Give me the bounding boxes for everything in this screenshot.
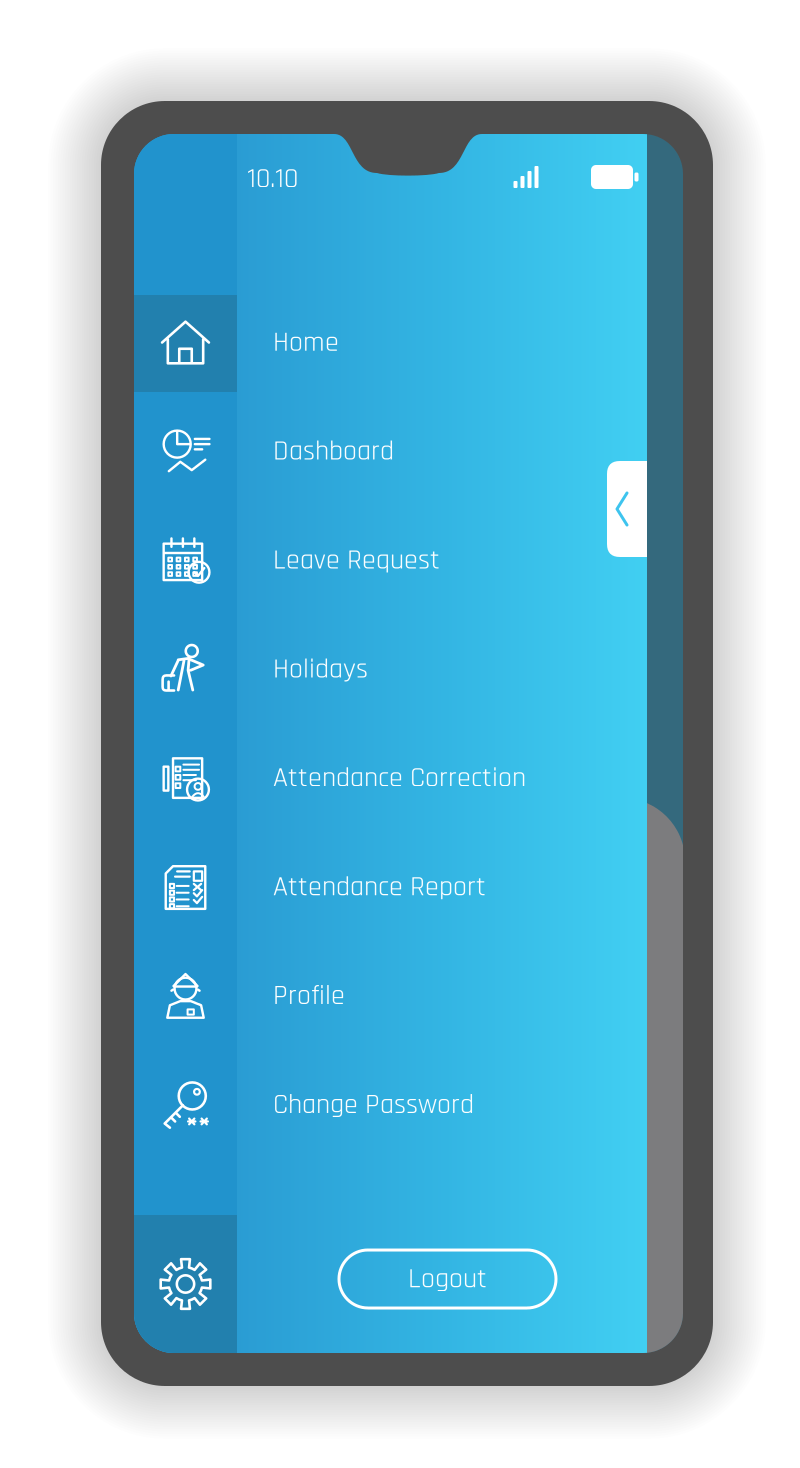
button[interactable]: Logout [339, 1250, 556, 1308]
button[interactable]: Change Password [134, 1055, 647, 1155]
button[interactable]: Settings [134, 1215, 237, 1353]
staticText: Holidays [273, 651, 368, 687]
staticText: Attendance Correction [273, 760, 526, 796]
staticText: Leave Request [273, 542, 440, 578]
button[interactable]: Home [134, 292, 647, 392]
button[interactable]: Leave Request [134, 510, 647, 610]
staticText: Home [273, 325, 339, 360]
staticText: 10.10 [247, 161, 298, 197]
staticText: Dashboard [273, 433, 394, 469]
button[interactable]: Close menu [607, 461, 647, 557]
staticText: Change Password [273, 1087, 474, 1123]
button[interactable]: Attendance Correction [134, 728, 647, 828]
button[interactable]: Attendance Report [134, 837, 647, 937]
staticText: Profile [273, 978, 345, 1014]
button[interactable]: Profile [134, 946, 647, 1046]
staticText: Attendance Report [273, 869, 486, 905]
button[interactable]: Holidays [134, 619, 647, 719]
staticText: Logout [408, 1261, 487, 1297]
button[interactable]: Dashboard [134, 401, 647, 501]
